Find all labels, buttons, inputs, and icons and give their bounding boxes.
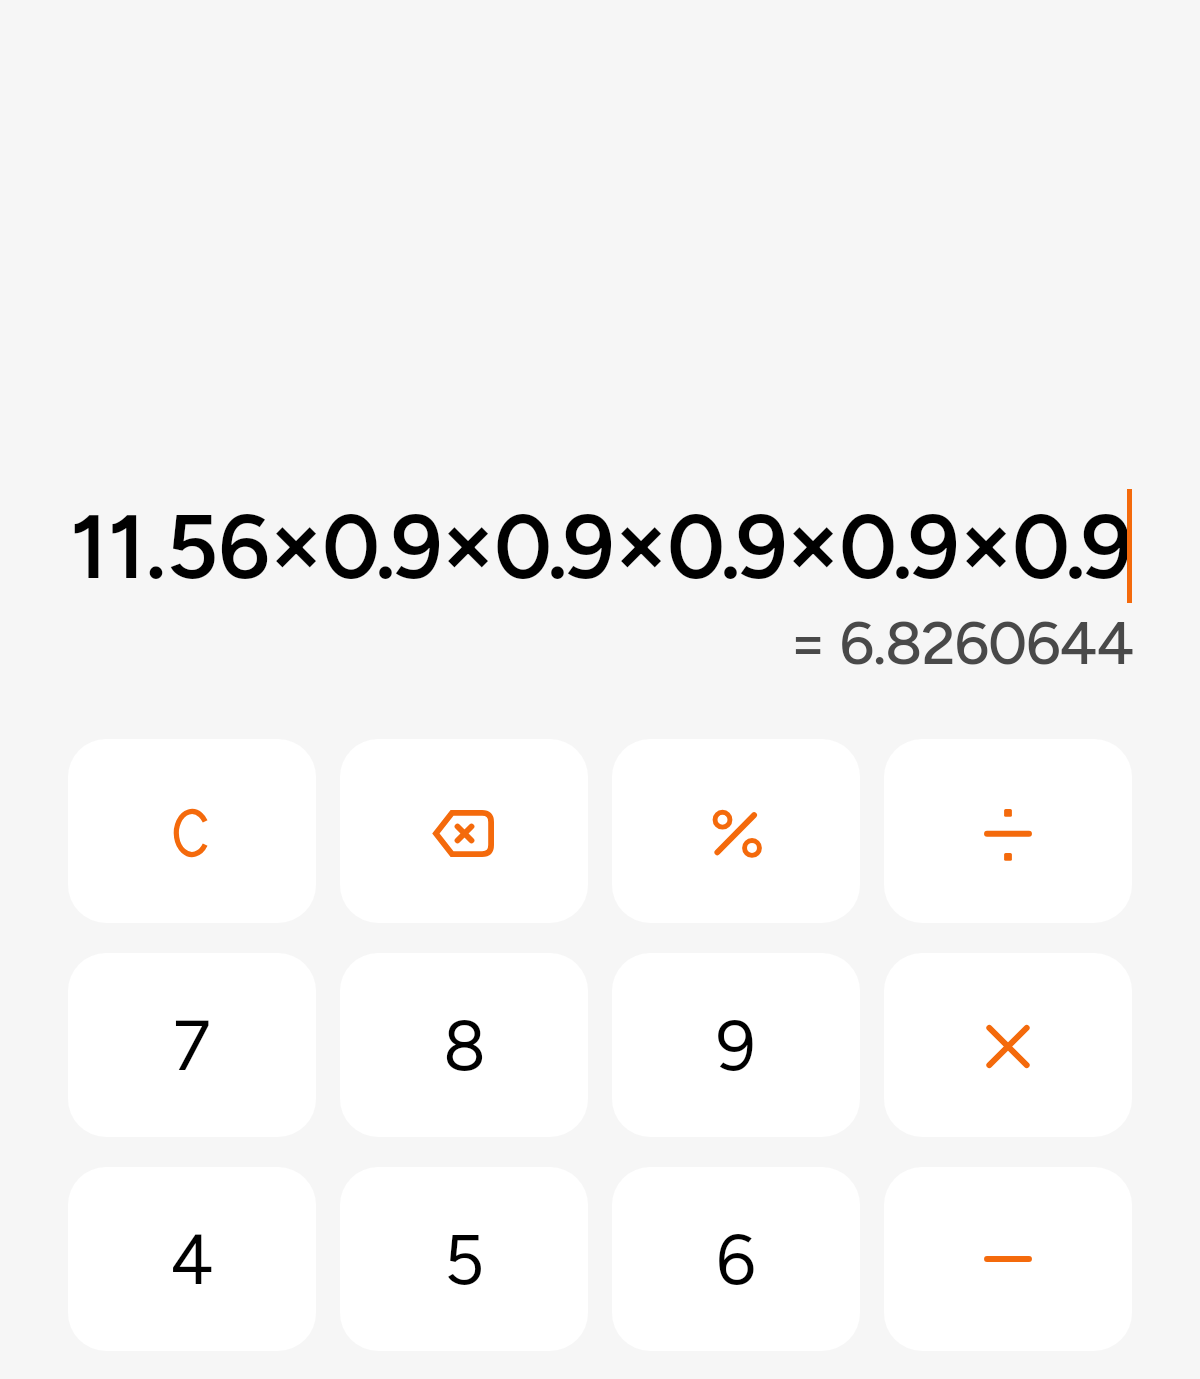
button[interactable]: 7 bbox=[68, 953, 316, 1137]
staticText: 9 bbox=[716, 1003, 756, 1087]
button[interactable]: 4 bbox=[68, 1167, 316, 1351]
button[interactable]: Percent bbox=[612, 739, 860, 923]
button[interactable]: 5 bbox=[340, 1167, 588, 1351]
staticText: 8 bbox=[443, 1003, 486, 1087]
button[interactable]: 8 bbox=[340, 953, 588, 1137]
staticText: 11.56 bbox=[70, 492, 270, 600]
staticText: × bbox=[265, 483, 328, 602]
staticText: 0.9 bbox=[839, 492, 955, 600]
staticText: 0.9 bbox=[494, 492, 610, 600]
staticText: 0.9 bbox=[1012, 492, 1128, 600]
staticText: × bbox=[610, 483, 673, 602]
staticText: 0.9 bbox=[667, 492, 783, 600]
staticText: × bbox=[437, 483, 500, 602]
staticText: = 6.8260644 bbox=[0, 606, 1133, 679]
staticText: 0.9 bbox=[322, 492, 438, 600]
staticText: 5 bbox=[444, 1217, 485, 1301]
staticText: 6 bbox=[716, 1217, 756, 1301]
button[interactable]: Minus bbox=[884, 1167, 1132, 1351]
staticText: 4 bbox=[170, 1217, 214, 1301]
button[interactable]: Multiply bbox=[884, 953, 1132, 1137]
staticText: × bbox=[955, 483, 1018, 602]
button[interactable]: Backspace bbox=[340, 739, 588, 923]
button[interactable]: Clear bbox=[68, 739, 316, 923]
button[interactable]: 9 bbox=[612, 953, 860, 1137]
button[interactable]: 6 bbox=[612, 1167, 860, 1351]
button[interactable]: Divide bbox=[884, 739, 1132, 923]
staticText: 7 bbox=[173, 1003, 211, 1087]
staticText: × bbox=[782, 483, 845, 602]
